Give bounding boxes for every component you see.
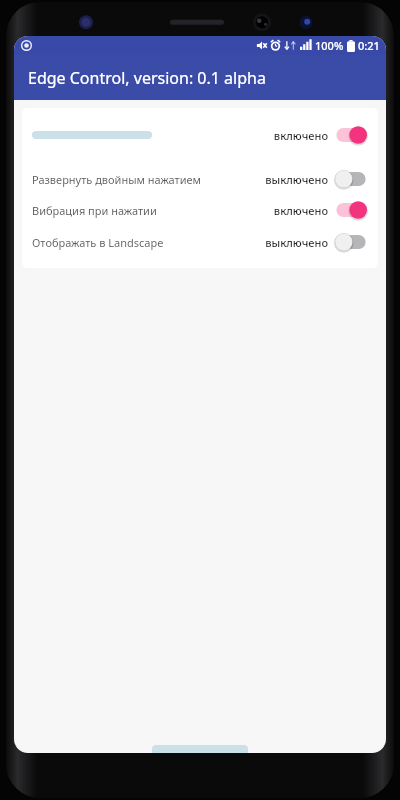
button[interactable]: Отображать в Landscape: [22, 226, 378, 258]
staticText: 100%: [315, 38, 344, 53]
button[interactable]: Switch off: [334, 169, 368, 189]
staticText: Отображать в Landscape: [32, 235, 164, 250]
staticText: выключено: [265, 235, 328, 250]
button[interactable]: включено: [22, 118, 378, 152]
staticText: включено: [273, 203, 328, 218]
staticText: включено: [273, 128, 328, 143]
button[interactable]: Развернуть двойным нажатием: [22, 164, 378, 194]
button[interactable]: Switch on: [334, 200, 368, 220]
button[interactable]: Switch on: [334, 125, 368, 145]
staticText: выключено: [265, 172, 328, 187]
button[interactable]: Вибрация при нажатии: [22, 194, 378, 226]
staticText: 0:21: [358, 38, 380, 53]
button[interactable]: Edge handle: [152, 745, 248, 753]
staticText: Развернуть двойным нажатием: [32, 172, 202, 187]
button[interactable]: Switch off: [334, 232, 368, 252]
staticText: Edge Control, version: 0.1 alpha: [28, 67, 266, 89]
staticText: Вибрация при нажатии: [32, 203, 157, 218]
